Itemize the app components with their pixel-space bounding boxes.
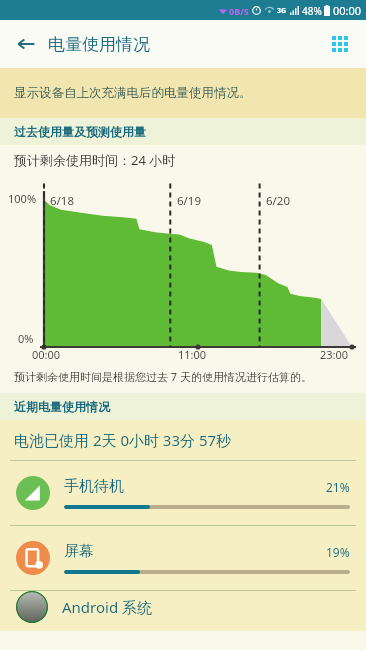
staticText: 预计剩余使用时间是根据您过去 7 天的使用情况进行估算的。 [14,369,313,384]
staticText: 100% [8,191,37,206]
staticText: 0B/S [229,5,249,17]
staticText: 手机待机 [64,477,124,496]
staticText: 48% [302,4,322,18]
staticText: 电量使用情况 [48,34,150,55]
button[interactable]: 手机待机 [0,461,366,525]
button[interactable]: Back [8,26,44,62]
staticText: 近期电量使用情况 [14,399,110,414]
staticText: 预计剩余使用时间：24 小时 [14,151,176,169]
button[interactable]: Apps grid [322,26,358,62]
staticText: 电池已使用 2天 0小时 33分 57秒 [14,430,232,450]
staticText: Android 系统 [62,597,153,617]
staticText: 过去使用量及预测使用量 [14,124,146,139]
staticText: 19% [326,544,350,560]
staticText: 6/20 [266,193,291,209]
staticText: 21% [326,479,350,495]
staticText: 6/19 [177,193,202,209]
staticText: 11:00 [178,347,207,362]
button[interactable]: Android 系统 [0,591,366,623]
staticText: 23:00 [320,347,349,362]
staticText: 6/18 [50,193,75,209]
button[interactable]: 屏幕 [0,526,366,590]
staticText: 0% [18,331,34,346]
staticText: 3G [277,6,287,16]
staticText: 00:00 [333,3,362,18]
staticText: 00:00 [32,347,61,362]
staticText: 显示设备自上次充满电后的电量使用情况。 [14,85,252,101]
staticText: 屏幕 [64,542,94,561]
